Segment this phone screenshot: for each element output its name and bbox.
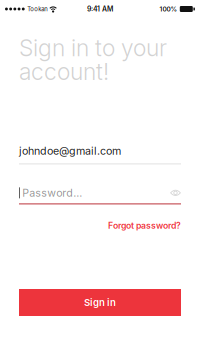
button[interactable]: johndoe@gmail.com (19, 144, 181, 164)
staticText: Sign in (84, 297, 116, 308)
staticText: Password... (22, 186, 82, 199)
button[interactable]: Sign in (19, 289, 181, 316)
staticText: account! (19, 58, 109, 85)
staticText: 9:41 AM (87, 5, 113, 13)
staticText: johndoe@gmail.com (19, 144, 121, 157)
staticText: Sign in to your (19, 34, 167, 62)
staticText: Forgot password? (108, 220, 181, 231)
staticText: 100% (160, 5, 178, 13)
staticText: Tookan (27, 5, 47, 13)
button[interactable]: Show password (170, 188, 181, 197)
button[interactable]: Forgot password? (108, 220, 181, 231)
button[interactable]: Password... (19, 186, 82, 199)
